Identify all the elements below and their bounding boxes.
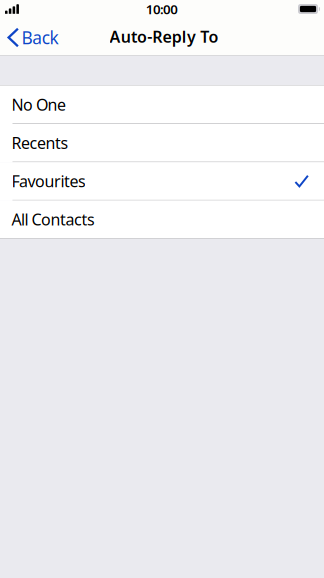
staticText: Favourites <box>11 170 86 192</box>
button[interactable]: Back <box>0 20 68 55</box>
staticText: Recents <box>11 132 68 153</box>
button[interactable]: No One <box>0 86 324 124</box>
staticText: All Contacts <box>11 209 95 230</box>
staticText: Back <box>22 26 58 49</box>
staticText: No One <box>11 94 66 115</box>
button[interactable]: All Contacts <box>0 201 324 238</box>
staticText: Auto-Reply To <box>110 26 218 47</box>
button[interactable]: Recents <box>0 124 324 162</box>
button[interactable]: Favourites <box>0 162 324 201</box>
staticText: 10:00 <box>146 0 178 18</box>
